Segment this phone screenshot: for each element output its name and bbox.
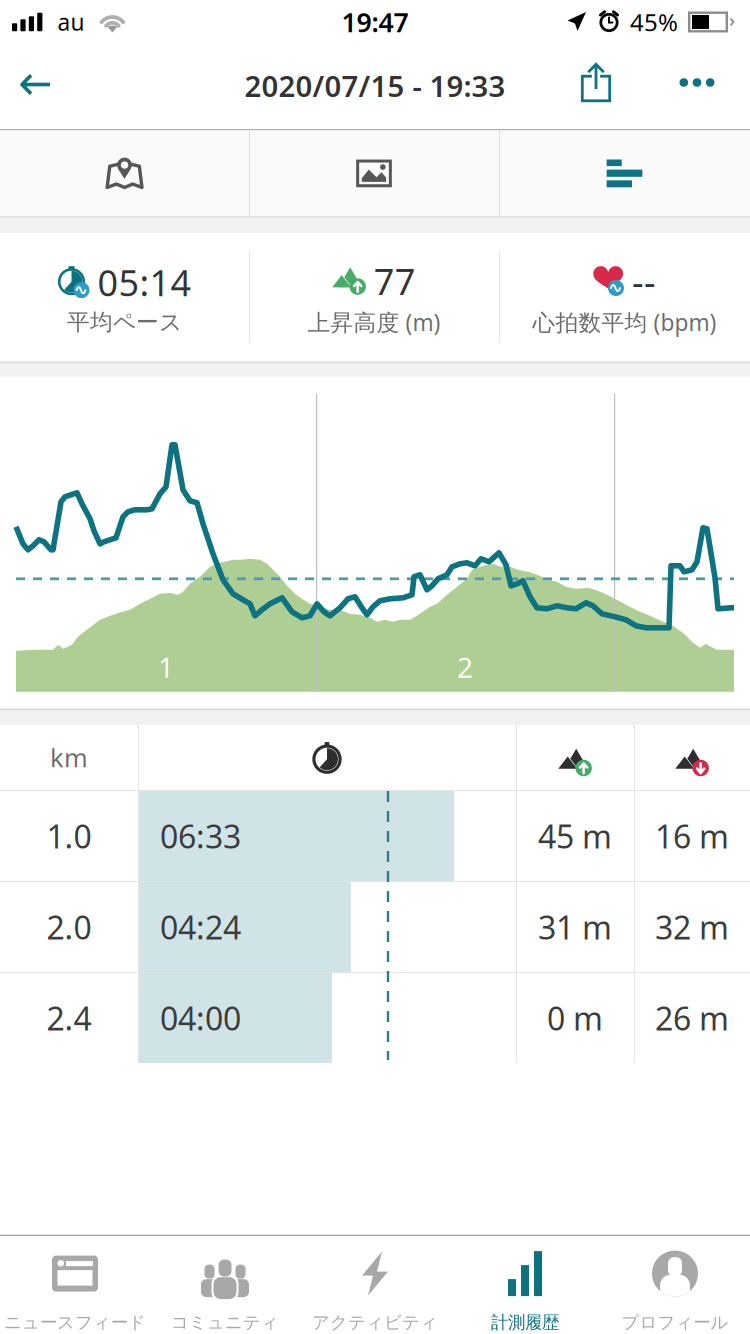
button[interactable]: Charts — [499, 130, 750, 216]
staticText: コミュニティ — [171, 1312, 279, 1333]
staticText: 77 — [374, 257, 416, 305]
staticText: 2.0 — [46, 906, 91, 948]
button[interactable]: ニュースフィード — [0, 1236, 150, 1334]
staticText: 32 m — [655, 906, 729, 948]
staticText: 2 — [457, 648, 473, 685]
staticText: 19:47 — [341, 4, 408, 40]
staticText: 2020/07/15 - 19:33 — [244, 66, 505, 105]
staticText: 06:33 — [160, 815, 241, 857]
staticText: プロフィール — [621, 1312, 728, 1333]
staticText: 16 m — [655, 815, 729, 857]
button[interactable]: Back — [0, 44, 72, 129]
staticText: 1 — [158, 648, 174, 685]
staticText: au — [57, 7, 84, 37]
staticText: 04:00 — [160, 997, 241, 1039]
staticText: -- — [632, 257, 656, 305]
staticText: 1.0 — [46, 815, 91, 857]
staticText: 04:24 — [160, 906, 241, 948]
button[interactable]: Share — [548, 44, 644, 129]
staticText: 31 m — [538, 906, 612, 948]
button[interactable]: 計測履歴 — [450, 1236, 600, 1334]
staticText: 平均ペース — [67, 308, 182, 336]
staticText: 45% — [630, 6, 678, 38]
button[interactable]: Map — [0, 130, 249, 216]
staticText: 計測履歴 — [491, 1312, 559, 1333]
staticText: 26 m — [655, 997, 729, 1039]
staticText: 心拍数平均 (bpm) — [532, 307, 716, 337]
button[interactable]: アクティビティ — [300, 1236, 450, 1334]
button[interactable]: Photos — [249, 130, 499, 216]
button[interactable]: More options — [644, 44, 750, 129]
staticText: km — [50, 741, 88, 774]
staticText: 上昇高度 (m) — [307, 307, 440, 337]
staticText: 0 m — [547, 997, 603, 1039]
staticText: 45 m — [538, 815, 612, 857]
staticText: ニュースフィード — [4, 1312, 146, 1333]
staticText: アクティビティ — [312, 1312, 438, 1333]
button[interactable]: プロフィール — [600, 1236, 750, 1334]
button[interactable]: コミュニティ — [150, 1236, 300, 1334]
staticText: 2.4 — [46, 997, 91, 1039]
staticText: 05:14 — [97, 258, 191, 306]
